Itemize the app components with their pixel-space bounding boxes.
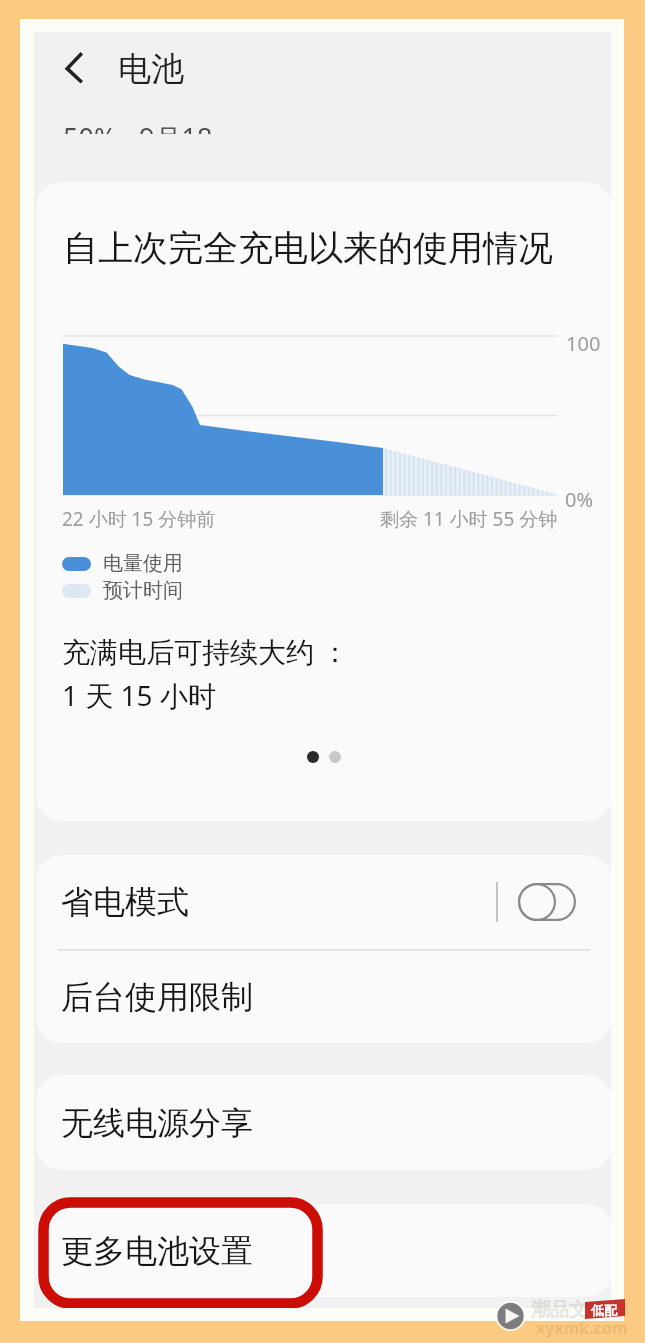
staticText: 50% - 9月18 <box>63 119 213 134</box>
button[interactable]: Back <box>34 32 611 142</box>
staticText: 100 <box>566 330 601 357</box>
button[interactable]: 更多电池设置 <box>36 1204 611 1297</box>
button[interactable]: 后台使用限制 <box>36 950 611 1043</box>
staticText: 剩余 11 小时 55 分钟 <box>380 506 558 532</box>
staticText: 电池 <box>118 48 184 90</box>
staticText: 自上次完全充电以来的使用情况 <box>63 226 553 270</box>
staticText: 潮品文 <box>531 1298 588 1322</box>
staticText: 省电模式 <box>61 882 189 922</box>
staticText: 1 天 15 小时 <box>62 676 216 714</box>
button[interactable]: 省电模式 <box>36 855 611 949</box>
staticText: 充满电后可持续大约 ： <box>62 632 350 670</box>
staticText: xyxmk.com <box>536 1317 628 1339</box>
button[interactable]: 无线电源分享 <box>36 1075 611 1170</box>
staticText: 后台使用限制 <box>61 977 253 1017</box>
staticText: 电量使用 <box>103 551 183 576</box>
staticText: 低配 <box>591 1302 617 1318</box>
staticText: 预计时间 <box>103 578 183 603</box>
button[interactable]: Power saving mode toggle <box>518 883 576 921</box>
staticText: 无线电源分享 <box>61 1103 253 1143</box>
staticText: 0% <box>565 486 594 513</box>
staticText: 更多电池设置 <box>61 1231 253 1271</box>
button[interactable]: Back <box>48 40 98 90</box>
staticText: 22 小时 15 分钟前 <box>62 506 216 532</box>
